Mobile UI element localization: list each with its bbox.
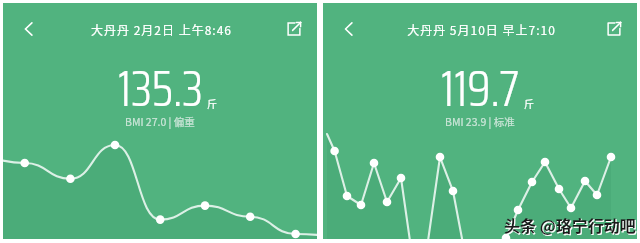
staticText: 头条 @珞宁行动吧 [504, 213, 636, 236]
staticText: 头条 @珞宁行动吧 [505, 214, 637, 237]
button[interactable]: Share [591, 6, 637, 52]
button[interactable]: Back [3, 6, 52, 52]
staticText: 斤 [207, 96, 217, 110]
button[interactable]: Back [323, 6, 372, 52]
staticText: 斤 [524, 96, 534, 110]
button[interactable]: Share [271, 6, 317, 52]
staticText: 119.7 [441, 50, 520, 127]
staticText: 大丹丹 2月2日 上午8:46 [52, 21, 271, 38]
staticText: 大丹丹 5月10日 早上7:10 [372, 21, 591, 38]
staticText: BMI 23.9 | 标准 [445, 114, 515, 129]
staticText: BMI 27.0 | 偏重 [125, 114, 195, 129]
staticText: 135.3 [118, 50, 203, 127]
